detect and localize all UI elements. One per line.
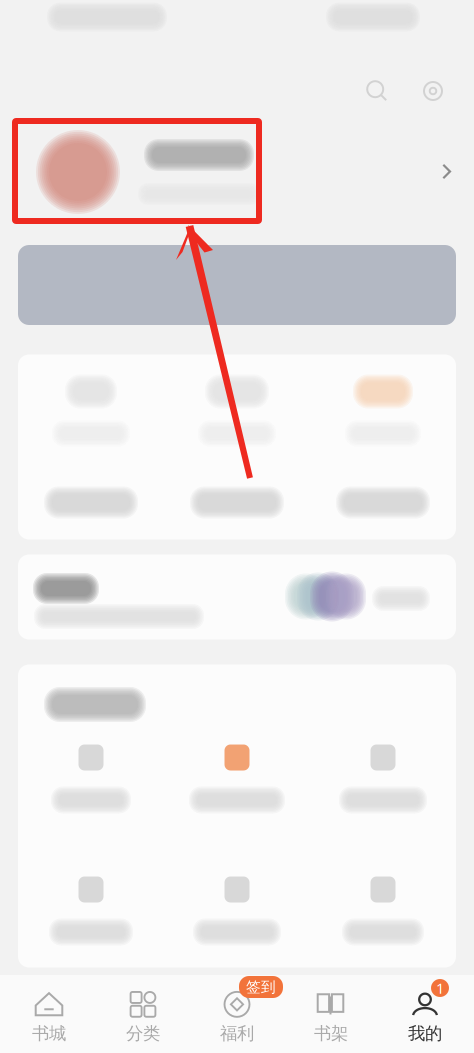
button[interactable]: 福利 xyxy=(190,975,284,1053)
button[interactable]: Stat xyxy=(18,354,164,539)
button[interactable] xyxy=(0,126,474,218)
button[interactable]: Tool xyxy=(164,876,310,946)
button[interactable]: 书架 xyxy=(284,975,378,1053)
staticText: 书城 xyxy=(32,1023,66,1044)
button[interactable]: Settings xyxy=(421,79,445,103)
button[interactable]: Promotion banner xyxy=(18,245,456,325)
staticText: 书架 xyxy=(314,1023,348,1044)
staticText: 签到 xyxy=(246,978,276,996)
button[interactable]: Tool xyxy=(310,876,456,946)
button[interactable]: Stat xyxy=(164,354,310,539)
button[interactable]: Tool xyxy=(310,744,456,814)
staticText: 分类 xyxy=(126,1023,160,1044)
button[interactable]: Search xyxy=(365,79,389,103)
staticText: 福利 xyxy=(220,1023,254,1044)
button[interactable] xyxy=(18,554,456,639)
button[interactable]: Stat xyxy=(310,354,456,539)
button[interactable]: 分类 xyxy=(96,975,190,1053)
button[interactable]: Tool xyxy=(164,744,310,814)
button[interactable]: 书城 xyxy=(2,975,96,1053)
staticText: 1 xyxy=(436,978,444,998)
button[interactable]: Tool xyxy=(18,744,164,814)
staticText: 我的 xyxy=(408,1023,442,1044)
button[interactable]: Tool xyxy=(18,876,164,946)
button[interactable]: 我的 xyxy=(378,975,472,1053)
